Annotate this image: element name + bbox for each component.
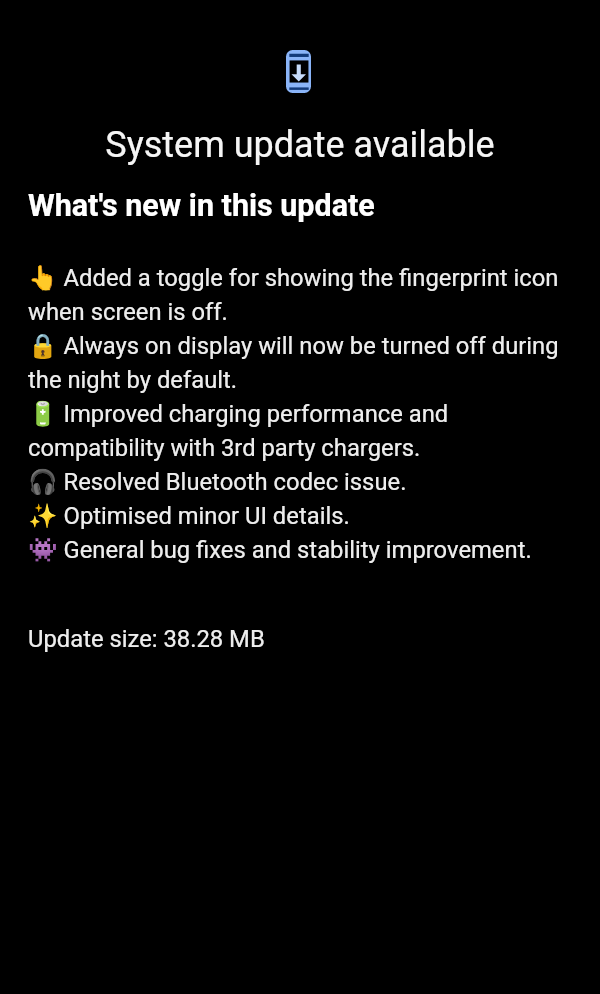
- staticText: Update size: 38.28 MB: [28, 625, 265, 653]
- staticText: 👆 Added a toggle for showing the fingerp…: [28, 264, 576, 564]
- staticText: What's new in this update: [28, 188, 375, 224]
- button[interactable]: System update: [286, 50, 311, 93]
- staticText: System update available: [0, 124, 600, 166]
